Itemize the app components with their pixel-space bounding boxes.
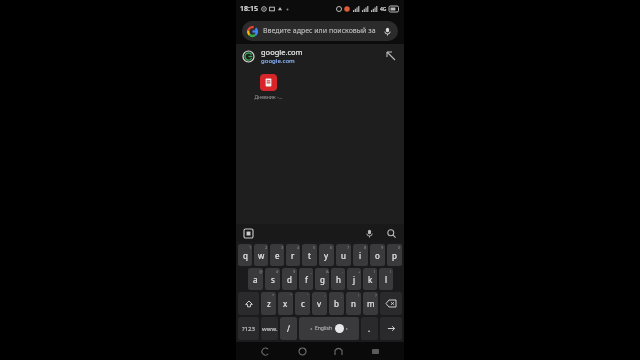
staticText: a: [253, 274, 258, 285]
staticText: 3: [281, 245, 284, 250]
staticText: .: [368, 323, 371, 334]
button[interactable]: /: [280, 317, 297, 340]
button[interactable]: z: [261, 292, 276, 315]
staticText: t: [308, 250, 311, 261]
staticText: google.com: [261, 57, 295, 65]
staticText: 7: [347, 245, 350, 250]
button[interactable]: f: [299, 268, 313, 290]
staticText: g: [320, 274, 325, 285]
button[interactable]: m: [363, 292, 378, 315]
button[interactable]: Fill query: [385, 50, 397, 62]
staticText: 9: [381, 245, 384, 250]
staticText: u: [341, 250, 346, 261]
button[interactable]: Recents: [330, 343, 346, 359]
staticText: &: [326, 269, 329, 274]
staticText: /: [287, 323, 290, 334]
staticText: k: [368, 274, 373, 285]
button[interactable]: d: [282, 268, 297, 290]
staticText: p: [392, 250, 397, 261]
staticText: f: [305, 274, 308, 285]
button[interactable]: n: [346, 292, 361, 315]
staticText: ?: [375, 293, 377, 298]
button[interactable]: Keyboard toggle: [367, 343, 383, 359]
staticText: :: [324, 293, 326, 298]
staticText: ▸: [346, 326, 349, 331]
button[interactable]: k: [363, 268, 377, 290]
button[interactable]: c: [295, 292, 310, 315]
button[interactable]: Tabs: [242, 227, 255, 240]
button[interactable]: l: [379, 268, 393, 290]
button[interactable]: Search: [384, 226, 398, 240]
button[interactable]: www.: [261, 317, 278, 340]
staticText: j: [353, 274, 356, 285]
button[interactable]: r: [286, 244, 300, 266]
staticText: #: [276, 269, 279, 274]
staticText: e: [275, 250, 280, 261]
button[interactable]: ◂: [299, 317, 359, 340]
staticText: v: [317, 298, 322, 309]
button[interactable]: h: [331, 268, 345, 290]
staticText: !: [358, 293, 360, 298]
staticText: ": [290, 293, 292, 298]
staticText: x: [283, 298, 288, 309]
button[interactable]: s: [265, 268, 280, 290]
staticText: h: [336, 274, 341, 285]
button[interactable]: w: [254, 244, 268, 266]
staticText: d: [287, 274, 292, 285]
button[interactable]: ?123: [238, 317, 259, 340]
staticText: 18:15: [240, 4, 258, 14]
staticText: ;: [341, 293, 343, 298]
staticText: 1: [249, 245, 252, 250]
button[interactable]: Home: [294, 343, 310, 359]
staticText: ?123: [242, 325, 255, 333]
staticText: y: [324, 250, 329, 261]
button[interactable]: t: [302, 244, 317, 266]
staticText: ◂: [310, 326, 313, 331]
button[interactable]: b: [329, 292, 344, 315]
button[interactable]: Voice search: [381, 25, 393, 37]
button[interactable]: Go: [380, 317, 402, 340]
staticText: _: [310, 269, 312, 274]
button[interactable]: Comma: [361, 317, 378, 340]
staticText: +: [358, 269, 361, 274]
staticText: m: [367, 298, 375, 309]
button[interactable]: p: [387, 244, 402, 266]
staticText: (: [374, 269, 376, 274]
button[interactable]: o: [370, 244, 385, 266]
button[interactable]: y: [319, 244, 334, 266]
button[interactable]: i: [353, 244, 368, 266]
button[interactable]: u: [336, 244, 351, 266]
staticText: n: [351, 298, 356, 309]
button[interactable]: q: [238, 244, 252, 266]
staticText: r: [291, 250, 295, 261]
staticText: b: [334, 298, 339, 309]
staticText: 5: [313, 245, 316, 250]
staticText: 4G: [380, 6, 387, 13]
button[interactable]: Дневник -...: [246, 74, 290, 101]
staticText: s: [271, 274, 275, 285]
staticText: Введите адрес или поисковый за: [263, 26, 376, 36]
button[interactable]: Voice input: [362, 226, 376, 240]
button[interactable]: Введите адрес или поисковый за: [242, 21, 398, 41]
button[interactable]: j: [347, 268, 361, 290]
button[interactable]: Back: [257, 343, 273, 359]
button[interactable]: Shift: [238, 292, 259, 315]
staticText: $: [293, 269, 296, 274]
button[interactable]: google.com: [236, 44, 404, 68]
staticText: ': [307, 293, 308, 298]
button[interactable]: a: [248, 268, 263, 290]
staticText: Дневник -...: [254, 94, 283, 101]
staticText: o: [375, 250, 380, 261]
staticText: 2: [265, 245, 268, 250]
button[interactable]: g: [315, 268, 329, 290]
staticText: www.: [262, 325, 278, 333]
staticText: @: [259, 269, 263, 274]
staticText: q: [243, 250, 248, 261]
staticText: 4: [297, 245, 300, 250]
staticText: 6: [330, 245, 333, 250]
button[interactable]: Backspace: [380, 292, 402, 315]
button[interactable]: x: [278, 292, 293, 315]
button[interactable]: e: [270, 244, 284, 266]
button[interactable]: v: [312, 292, 327, 315]
staticText: English: [315, 325, 333, 332]
